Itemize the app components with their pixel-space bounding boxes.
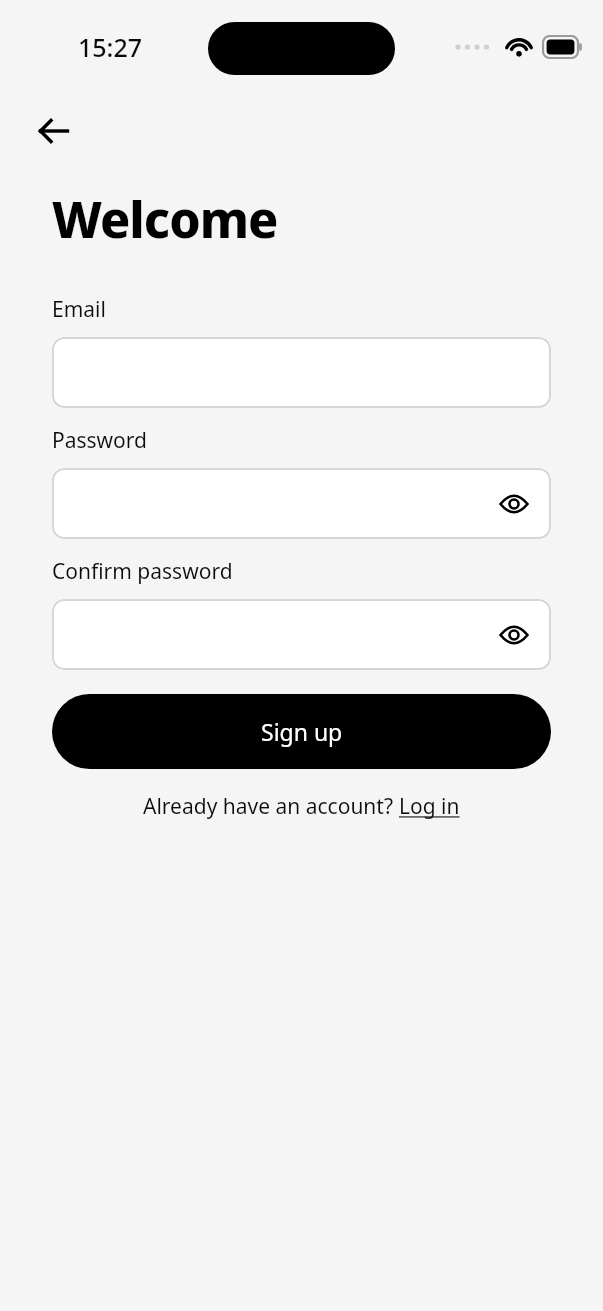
staticText: Welcome	[52, 185, 278, 253]
staticText: Sign up	[261, 716, 343, 747]
button[interactable]: Show password	[493, 483, 535, 525]
staticText: Password	[52, 426, 147, 455]
staticText: 15:27	[78, 30, 143, 64]
button[interactable]	[52, 337, 551, 408]
staticText: Email	[52, 295, 106, 324]
staticText: Already have an account?	[143, 792, 399, 821]
button[interactable]: Show confirm password	[52, 599, 551, 670]
button[interactable]: Show password	[52, 468, 551, 539]
button[interactable]: Sign up	[52, 694, 551, 769]
button[interactable]: Back	[32, 109, 76, 153]
button[interactable]: Show confirm password	[493, 614, 535, 656]
button[interactable]: Log in	[399, 792, 460, 821]
staticText: Log in	[399, 792, 460, 821]
staticText: Confirm password	[52, 557, 233, 586]
